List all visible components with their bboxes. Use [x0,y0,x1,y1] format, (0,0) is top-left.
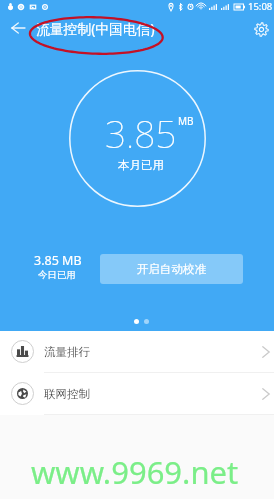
staticText: 联网控制 [44,387,90,401]
staticText: 15:08 [248,0,273,13]
button[interactable]: 联网控制 [0,373,274,414]
button[interactable]: Back [7,17,29,39]
button[interactable]: 开启自动校准 [100,254,243,284]
staticText: 开启自动校准 [137,262,206,276]
staticText: 3.85 [105,108,177,158]
staticText: MB [178,114,194,128]
staticText: 今日已用 [38,269,76,281]
staticText: 流量排行 [44,345,90,359]
button[interactable]: 流量排行 [0,331,274,372]
staticText: 本月已用 [118,158,164,172]
staticText: 流量控制(中国电信) [36,19,155,38]
button[interactable]: Settings [250,18,272,40]
staticText: 3.85 MB [34,252,82,269]
staticText: www.9969.net [31,451,239,493]
